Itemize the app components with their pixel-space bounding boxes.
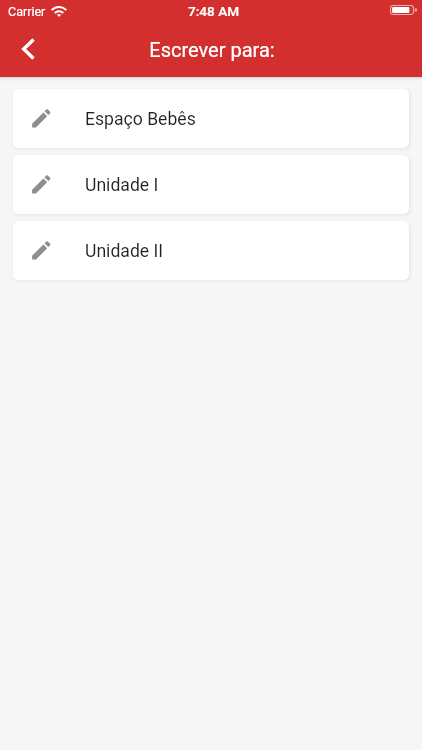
staticText: Carrier — [8, 4, 46, 19]
staticText: Unidade I — [85, 175, 159, 196]
staticText: Escrever para: — [149, 38, 275, 61]
staticText: Espaço Bebês — [85, 109, 196, 130]
button[interactable]: Unidade I — [13, 155, 409, 214]
button[interactable]: Back — [12, 33, 44, 65]
staticText: 7:48 AM — [188, 3, 240, 19]
staticText: Unidade II — [85, 241, 164, 262]
button[interactable]: Unidade II — [13, 221, 409, 280]
button[interactable]: Espaço Bebês — [13, 89, 409, 148]
